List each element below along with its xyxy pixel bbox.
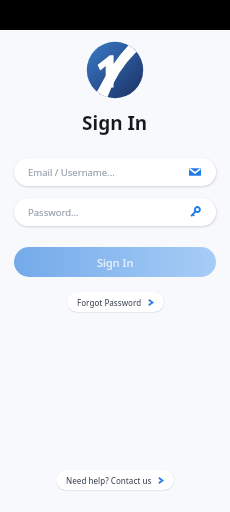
button[interactable]: Email / Username... xyxy=(14,158,216,186)
other: Password xyxy=(188,205,202,219)
button[interactable]: Sign In xyxy=(14,247,216,277)
other: Email xyxy=(188,165,202,179)
staticText: Email / Username... xyxy=(28,166,188,179)
staticText: Sign In xyxy=(82,110,148,136)
button[interactable]: Password... xyxy=(14,198,216,226)
staticText: Sign In xyxy=(97,255,134,270)
staticText: Forgot Password xyxy=(77,297,142,308)
staticText: Need help? Contact us xyxy=(66,475,152,486)
button[interactable]: Forgot Password xyxy=(67,292,164,312)
staticText: Password... xyxy=(28,206,188,219)
button[interactable]: Need help? Contact us xyxy=(56,470,174,490)
